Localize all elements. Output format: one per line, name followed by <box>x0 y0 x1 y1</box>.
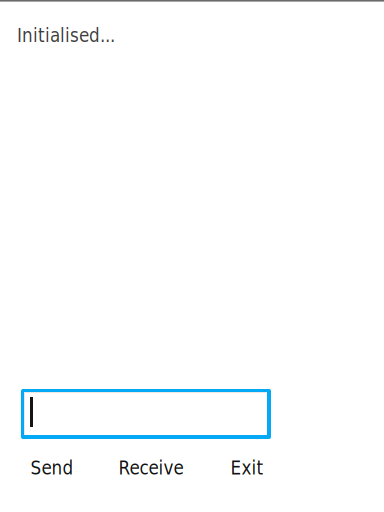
button[interactable]: Send <box>22 454 82 482</box>
staticText: Initialised... <box>17 25 115 46</box>
button[interactable]: Exit <box>222 454 272 482</box>
button[interactable]: Message entry field <box>21 389 271 439</box>
staticText: Exit <box>230 457 263 479</box>
staticText: Send <box>30 457 73 479</box>
button[interactable]: Receive <box>115 454 187 482</box>
staticText: Receive <box>118 457 183 479</box>
